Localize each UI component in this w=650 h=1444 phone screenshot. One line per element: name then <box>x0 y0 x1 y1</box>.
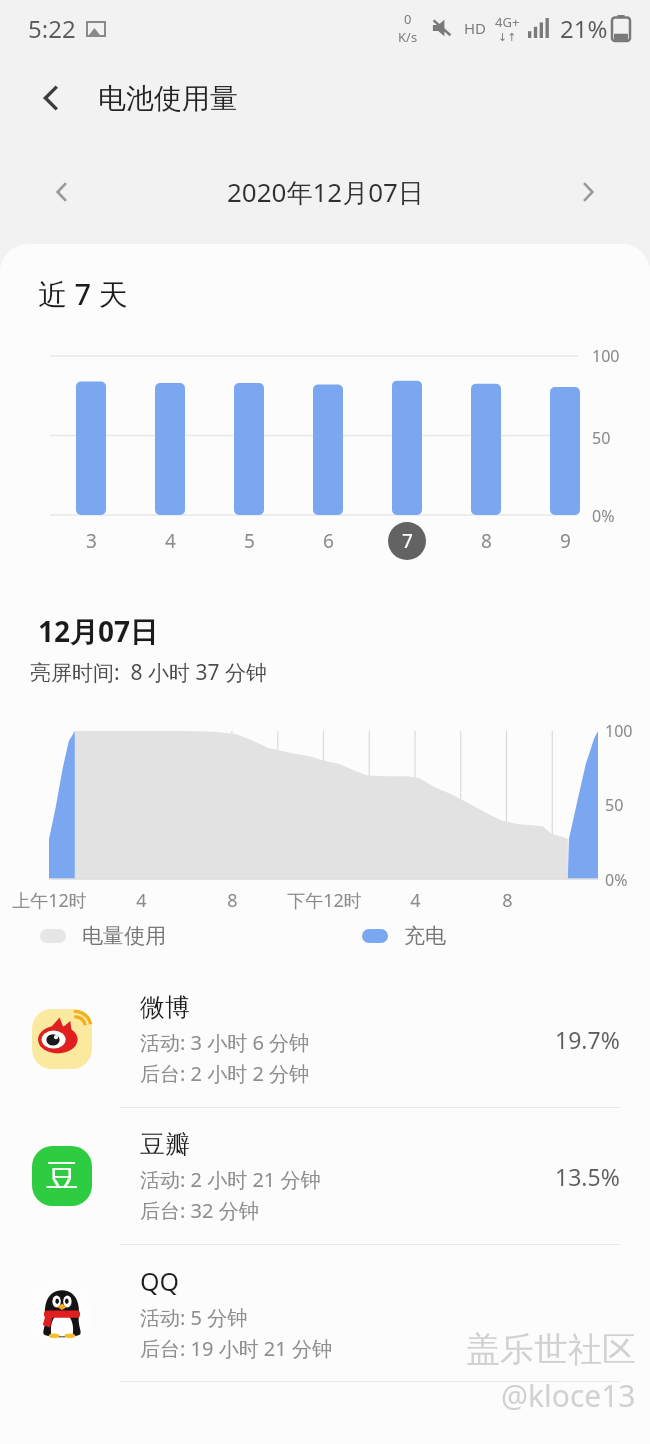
staticText: QQ <box>140 1264 180 1298</box>
button[interactable]: Back <box>24 70 80 126</box>
staticText: 5 <box>244 528 255 554</box>
staticText: 充电 <box>404 923 446 949</box>
staticText: 6 <box>323 528 334 554</box>
staticText: 后台: 2 小时 2 分钟 <box>140 1060 310 1087</box>
staticText: 活动: 2 小时 21 分钟 <box>140 1166 321 1193</box>
staticText: 8 <box>227 888 238 913</box>
staticText: 近 7 天 <box>38 274 128 314</box>
staticText: 5:22 <box>28 12 76 45</box>
staticText: 50 <box>592 427 611 449</box>
staticText: 8 <box>481 528 492 554</box>
staticText: 活动: 3 小时 6 分钟 <box>140 1029 310 1056</box>
staticText: 2020年12月07日 <box>227 174 424 210</box>
staticText: 活动: 5 分钟 <box>140 1304 248 1331</box>
staticText: 0 <box>404 10 412 28</box>
staticText: K/s <box>398 28 418 46</box>
staticText: 4 <box>410 888 421 913</box>
staticText: 电量使用 <box>82 923 166 949</box>
staticText: 豆 <box>46 1156 78 1196</box>
button[interactable]: Next day <box>566 170 610 214</box>
staticText: 7 <box>402 528 413 554</box>
staticText: 0% <box>605 869 628 891</box>
staticText: 4G+ <box>495 13 520 31</box>
staticText: 微博 <box>140 992 190 1023</box>
button[interactable]: 豆 <box>0 1108 650 1245</box>
staticText: 上午12时 <box>12 888 87 913</box>
staticText: 100 <box>605 720 633 742</box>
button[interactable]: Previous day <box>40 170 84 214</box>
staticText: 盖乐世社区 <box>466 1328 636 1371</box>
staticText: 3 <box>86 528 97 554</box>
staticText: HD <box>464 18 487 38</box>
staticText: 后台: 32 分钟 <box>140 1197 259 1224</box>
staticText: 50 <box>605 794 624 816</box>
staticText: 0% <box>592 505 615 527</box>
staticText: 4 <box>136 888 147 913</box>
staticText: ↓↑ <box>498 31 517 44</box>
button[interactable]: 微博 <box>0 971 650 1108</box>
staticText: 100 <box>592 345 620 367</box>
staticText: 8 <box>502 888 513 913</box>
staticText: 下午12时 <box>287 888 362 913</box>
staticText: 21% <box>560 12 608 45</box>
staticText: @kloce13 <box>501 1375 636 1416</box>
staticText: 4 <box>165 528 176 554</box>
staticText: 电池使用量 <box>98 81 238 116</box>
staticText: 9 <box>560 528 571 554</box>
button[interactable]: QQ <box>0 1245 650 1382</box>
staticText: 后台: 19 小时 21 分钟 <box>140 1335 332 1362</box>
staticText: 12月07日 <box>38 612 159 650</box>
staticText: 豆瓣 <box>140 1129 190 1160</box>
staticText: 13.5% <box>555 1161 620 1192</box>
staticText: 19.7% <box>555 1024 620 1055</box>
staticText: 亮屏时间: 8 小时 37 分钟 <box>30 658 267 687</box>
